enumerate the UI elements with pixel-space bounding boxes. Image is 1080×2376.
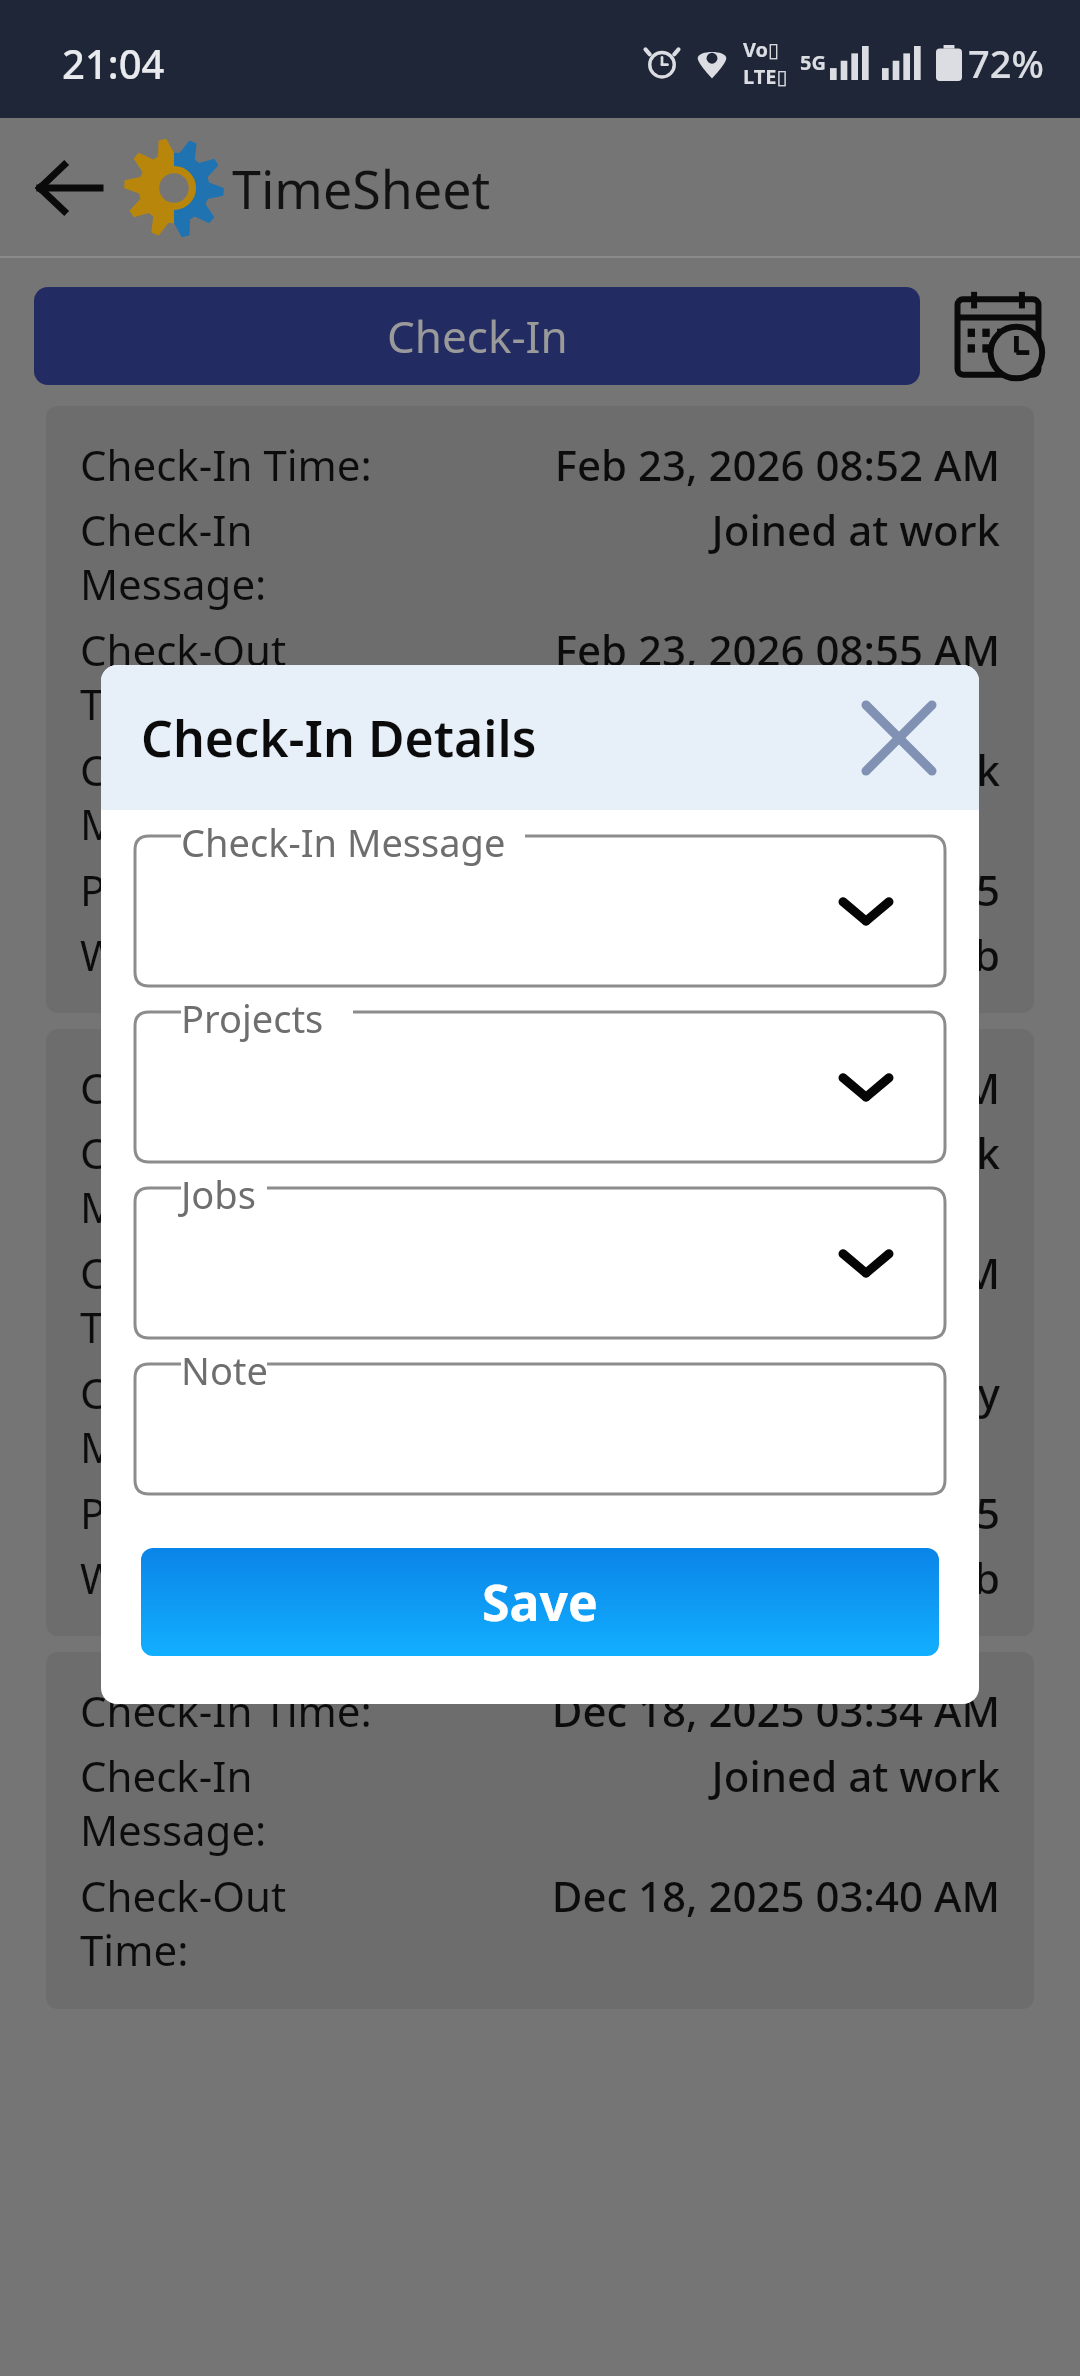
button[interactable]: Note xyxy=(135,1364,945,1494)
staticText: Check-In xyxy=(387,306,568,366)
staticText: Save xyxy=(482,1568,598,1636)
staticText: Project: xyxy=(80,861,768,918)
staticText: Contract - 5 xyxy=(768,861,1000,918)
staticText: Check-Out Message: xyxy=(80,1364,812,1476)
staticText: Check-Out Time: xyxy=(80,621,554,733)
staticText: Left work xyxy=(810,741,1000,798)
staticText: TimeSheet xyxy=(232,153,491,224)
staticText: Joined at work xyxy=(711,501,1000,558)
staticText: WorkOrder: xyxy=(80,1549,534,1606)
staticText: J1765037048 - paint job xyxy=(534,926,1000,983)
staticText: Jan 10, 2026 05:30 PM xyxy=(566,1244,1000,1301)
staticText: 72% xyxy=(968,37,1044,89)
button[interactable]: Back xyxy=(20,140,116,236)
staticText: Check-In Time: xyxy=(80,1682,551,1739)
staticText: Feb 23, 2026 08:52 AM xyxy=(554,436,1000,493)
staticText: Vo▯ xyxy=(743,36,780,63)
staticText: Check-In Time: xyxy=(80,436,554,493)
staticText: Joined at work xyxy=(711,1747,1000,1804)
staticText: Joined at work xyxy=(711,1124,1000,1181)
button[interactable]: Check-In Message xyxy=(135,836,945,986)
staticText: Check-In Message: xyxy=(80,1124,711,1236)
staticText: J1765037048 - paint job xyxy=(534,1549,1000,1606)
staticText: Check-Out Time: xyxy=(80,1867,551,1979)
button[interactable]: Check-In Time: xyxy=(46,1029,1034,1636)
staticText: Check-Out Message: xyxy=(80,741,810,853)
button[interactable]: Check-In xyxy=(34,287,920,385)
staticText: Project: xyxy=(80,1484,768,1541)
staticText: 5G xyxy=(800,49,826,76)
staticText: Left early xyxy=(812,1364,1000,1421)
staticText: Check-In Time: xyxy=(80,1059,564,1116)
staticText: Jan 10, 2026 09:10 AM xyxy=(564,1059,1000,1116)
button[interactable]: Check-In Time: xyxy=(46,406,1034,1013)
staticText: Check-In Message: xyxy=(80,501,711,613)
button[interactable]: Save xyxy=(141,1548,939,1656)
staticText: Check-In Message: xyxy=(80,1747,711,1859)
button[interactable]: Calendar history xyxy=(946,284,1050,388)
staticText: WorkOrder: xyxy=(80,926,534,983)
staticText: Dec 18, 2025 03:40 AM xyxy=(551,1867,1000,1924)
staticText: Check-In Details xyxy=(141,704,537,772)
button[interactable]: Close xyxy=(851,690,947,786)
staticText: LTE▯ xyxy=(743,63,788,90)
button[interactable]: Projects xyxy=(135,1012,945,1162)
staticText: Feb 23, 2026 08:55 AM xyxy=(554,621,1000,678)
staticText: Dec 18, 2025 03:34 AM xyxy=(551,1682,1000,1739)
staticText: Jobs xyxy=(181,1168,256,1220)
staticText: Check-In Message xyxy=(181,816,506,868)
staticText: Check-Out Time: xyxy=(80,1244,566,1356)
button[interactable]: Jobs xyxy=(135,1188,945,1338)
staticText: Contract - 5 xyxy=(768,1484,1000,1541)
button[interactable]: Check-In Time: xyxy=(46,1652,1034,2009)
staticText: Projects xyxy=(181,992,324,1044)
staticText: Note xyxy=(181,1344,269,1396)
staticText: 21:04 xyxy=(62,36,165,90)
